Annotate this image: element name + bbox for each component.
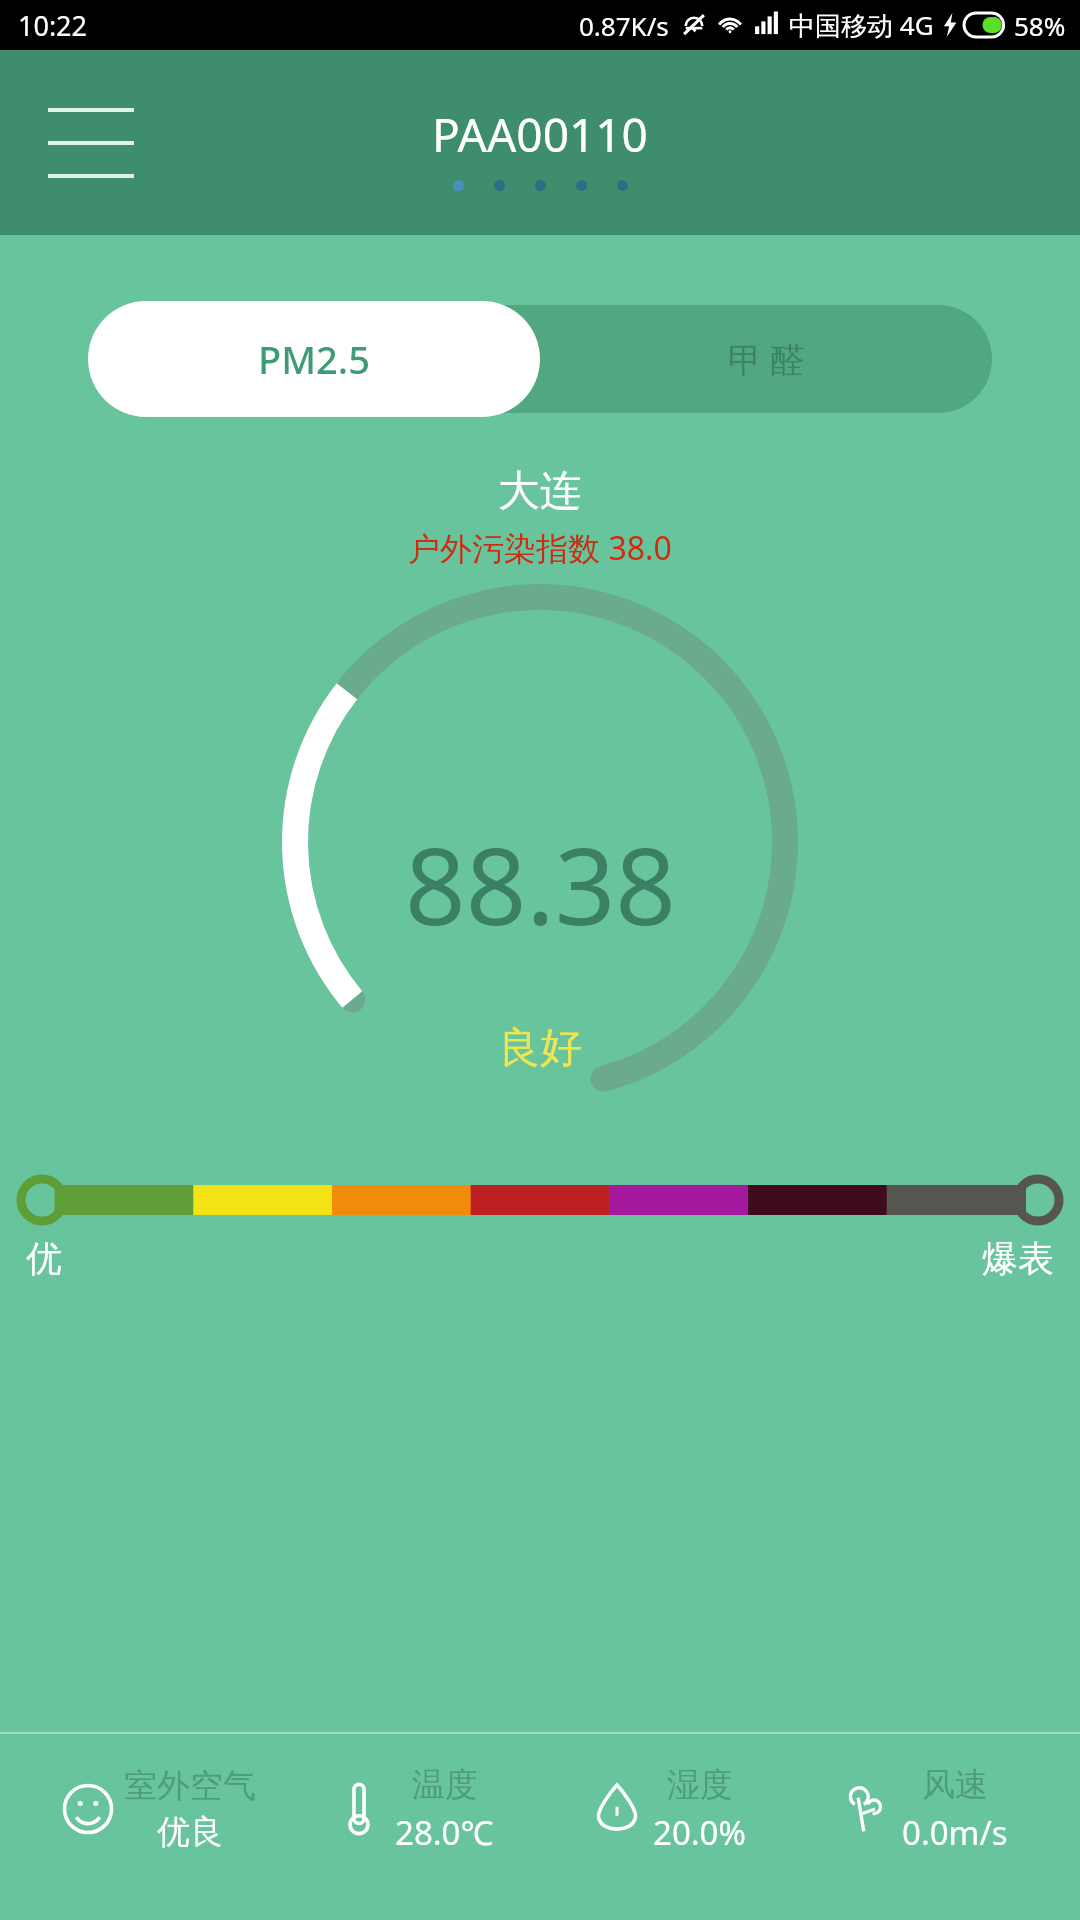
- staticText: 0.87K/s: [579, 8, 669, 43]
- button[interactable]: 室外空气: [30, 1734, 285, 1884]
- staticText: 0.0m/s: [902, 1810, 1008, 1855]
- staticText: 良好: [498, 1022, 582, 1075]
- staticText: 28.0℃: [395, 1810, 494, 1855]
- staticText: 优良: [157, 1811, 223, 1853]
- staticText: 大连: [0, 465, 1080, 518]
- button[interactable]: 风速: [795, 1734, 1050, 1884]
- button[interactable]: 湿度: [540, 1734, 795, 1884]
- other: 湿度: [589, 1781, 645, 1837]
- staticText: 88.38: [405, 812, 676, 956]
- button[interactable]: 甲 醛: [540, 305, 992, 413]
- button[interactable]: PM2.5: [88, 301, 540, 417]
- staticText: PM2.5: [258, 333, 370, 385]
- staticText: 10:22: [18, 7, 88, 44]
- staticText: 温度: [412, 1764, 478, 1806]
- staticText: 爆表: [982, 1236, 1054, 1281]
- staticText: 20.0%: [653, 1810, 746, 1855]
- other: 室外空气: [60, 1781, 116, 1837]
- staticText: 优: [26, 1236, 62, 1281]
- staticText: 风速: [922, 1764, 988, 1806]
- button[interactable]: Menu: [48, 108, 134, 178]
- other: 风速: [838, 1781, 894, 1837]
- staticText: 户外污染指数 38.0: [0, 526, 1080, 570]
- staticText: 湿度: [667, 1764, 733, 1806]
- staticText: 甲 醛: [728, 336, 805, 382]
- other: 温度: [331, 1781, 387, 1837]
- staticText: 中国移动 4G: [789, 7, 934, 43]
- button[interactable]: [88, 305, 540, 413]
- button[interactable]: 温度: [285, 1734, 540, 1884]
- staticText: PAA00110: [432, 103, 648, 166]
- staticText: 58%: [1014, 8, 1066, 43]
- staticText: 室外空气: [124, 1765, 256, 1807]
